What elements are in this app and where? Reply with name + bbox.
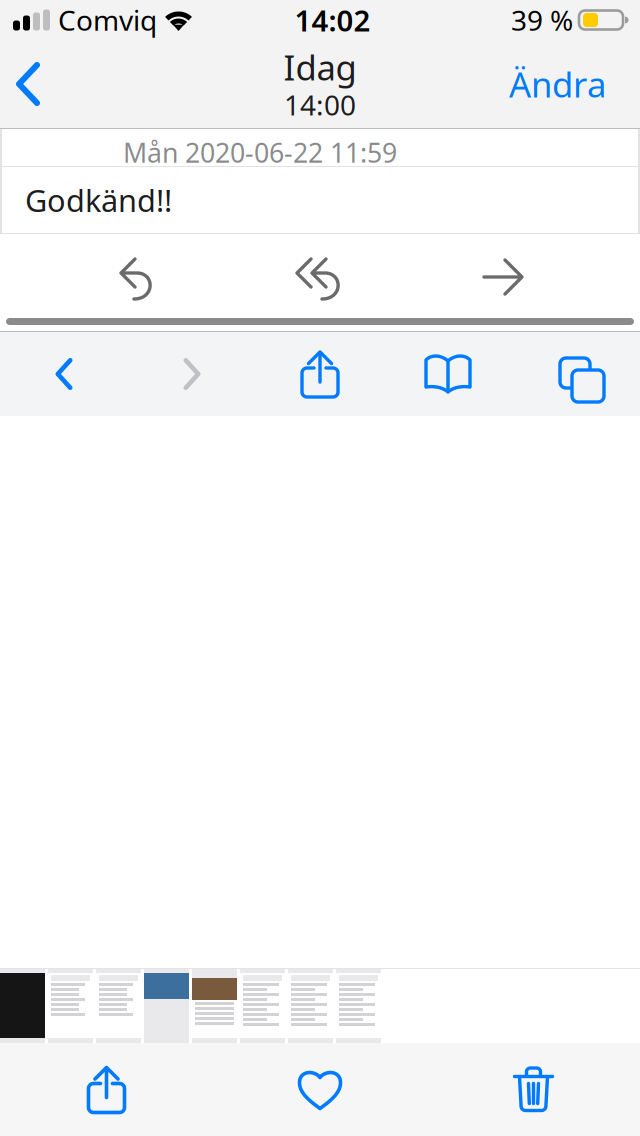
staticText: 14:00 — [284, 86, 356, 123]
staticText: Mån 2020-06-22 11:59 — [123, 135, 397, 170]
button[interactable]: Ändra — [509, 40, 640, 128]
staticText: Comviq — [58, 1, 157, 39]
button[interactable]: Reply All — [230, 246, 412, 308]
staticText: 39 % — [511, 1, 573, 39]
staticText: 14:02 — [294, 0, 370, 39]
button[interactable]: Share — [0, 1043, 213, 1136]
button[interactable]: Reply — [48, 246, 230, 308]
button[interactable]: Back — [0, 40, 60, 128]
button[interactable]: Bookmarks — [384, 332, 512, 416]
button[interactable]: Tabs — [512, 332, 640, 416]
staticText: Idag — [283, 44, 356, 90]
button[interactable]: Back — [0, 332, 128, 416]
staticText: Godkänd!! — [25, 180, 172, 220]
staticText: Ändra — [509, 61, 606, 107]
button[interactable]: Delete — [427, 1043, 640, 1136]
button[interactable]: Share — [256, 332, 384, 416]
button[interactable]: Forward — [412, 246, 594, 308]
button[interactable]: Favorite — [213, 1043, 427, 1136]
button[interactable]: Forward — [128, 332, 256, 416]
